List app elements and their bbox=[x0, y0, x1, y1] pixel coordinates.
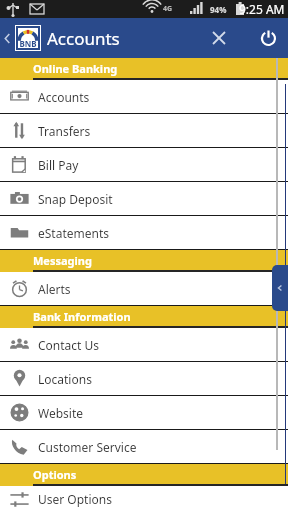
staticText: Options bbox=[33, 467, 77, 482]
button[interactable]: eStatements bbox=[0, 216, 288, 250]
button[interactable]: Alerts bbox=[0, 272, 288, 306]
staticText: eStatements bbox=[38, 225, 110, 241]
staticText: 4G bbox=[163, 4, 173, 14]
button[interactable]: Close bbox=[207, 26, 231, 50]
staticText: Transfers bbox=[38, 123, 91, 139]
staticText: Locations bbox=[38, 371, 92, 387]
staticText: Accounts bbox=[47, 27, 120, 50]
button[interactable]: Contact Us bbox=[0, 328, 288, 362]
staticText: Customer Service bbox=[38, 439, 137, 455]
button[interactable]: Snap Deposit bbox=[0, 182, 288, 216]
staticText: Bill Pay bbox=[38, 157, 79, 173]
button[interactable]: Online Banking bbox=[0, 58, 288, 80]
button[interactable]: Customer Service bbox=[0, 430, 288, 464]
button[interactable]: Open panel bbox=[272, 265, 288, 311]
staticText: Alerts bbox=[38, 281, 71, 297]
button[interactable]: Locations bbox=[0, 362, 288, 396]
button[interactable]: User Options bbox=[0, 486, 288, 512]
button[interactable]: Accounts bbox=[0, 80, 288, 114]
button[interactable]: Bank Information bbox=[0, 306, 288, 328]
staticText: 9:25 AM bbox=[239, 1, 285, 17]
button[interactable]: Back bbox=[0, 31, 14, 45]
staticText: Accounts bbox=[38, 89, 90, 105]
staticText: Messaging bbox=[33, 253, 92, 268]
button[interactable]: Bill Pay bbox=[0, 148, 288, 182]
staticText: Snap Deposit bbox=[38, 191, 113, 207]
staticText: BNB bbox=[19, 38, 37, 49]
button[interactable]: Website bbox=[0, 396, 288, 430]
button[interactable]: Options bbox=[0, 464, 288, 486]
button[interactable]: Messaging bbox=[0, 250, 288, 272]
staticText: Contact Us bbox=[38, 337, 100, 353]
staticText: User Options bbox=[38, 491, 112, 507]
staticText: 94% bbox=[210, 4, 227, 15]
staticText: Bank Information bbox=[33, 309, 131, 324]
staticText: Website bbox=[38, 405, 84, 421]
button[interactable]: Log off bbox=[255, 25, 281, 51]
button[interactable]: Transfers bbox=[0, 114, 288, 148]
staticText: Online Banking bbox=[33, 61, 118, 76]
